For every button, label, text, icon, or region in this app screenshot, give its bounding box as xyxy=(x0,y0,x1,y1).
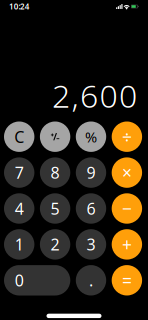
staticText: . xyxy=(89,270,93,291)
button[interactable]: Divide xyxy=(112,121,142,152)
staticText: 4 xyxy=(15,198,24,219)
staticText: − xyxy=(122,197,132,220)
staticText: 2,600 xyxy=(52,74,137,116)
staticText: 3 xyxy=(86,234,95,255)
staticText: 6 xyxy=(86,198,95,219)
button[interactable]: Multiply xyxy=(112,157,142,188)
button[interactable]: Percent xyxy=(76,121,106,152)
staticText: 0 xyxy=(15,270,24,291)
staticText: 1 xyxy=(15,234,24,255)
button[interactable]: Equals xyxy=(112,265,142,295)
button[interactable]: Plus minus xyxy=(40,121,70,152)
staticText: 7 xyxy=(15,162,24,183)
button[interactable]: 3 xyxy=(76,229,106,260)
staticText: 9 xyxy=(86,162,95,183)
button[interactable]: 9 xyxy=(76,157,106,188)
staticText: 8 xyxy=(51,162,60,183)
staticText: = xyxy=(122,269,132,292)
staticText: 2 xyxy=(51,234,60,255)
staticText: 5 xyxy=(51,198,60,219)
button[interactable]: 4 xyxy=(4,193,34,224)
button[interactable]: Decimal point xyxy=(76,265,106,295)
staticText: % xyxy=(85,127,97,146)
staticText: + xyxy=(122,233,132,256)
staticText: × xyxy=(122,161,132,184)
button[interactable]: 6 xyxy=(76,193,106,224)
staticText: 10:24 xyxy=(9,1,30,12)
staticText: ÷ xyxy=(122,125,132,148)
button[interactable]: Clear xyxy=(4,121,34,152)
button[interactable]: 1 xyxy=(4,229,34,260)
button[interactable]: 8 xyxy=(40,157,70,188)
button[interactable]: Plus xyxy=(112,229,142,260)
button[interactable]: 7 xyxy=(4,157,34,188)
button[interactable]: 0 xyxy=(4,265,70,295)
button[interactable]: 2 xyxy=(40,229,70,260)
button[interactable]: 5 xyxy=(40,193,70,224)
staticText: C xyxy=(14,126,24,147)
button[interactable]: Minus xyxy=(112,193,142,224)
